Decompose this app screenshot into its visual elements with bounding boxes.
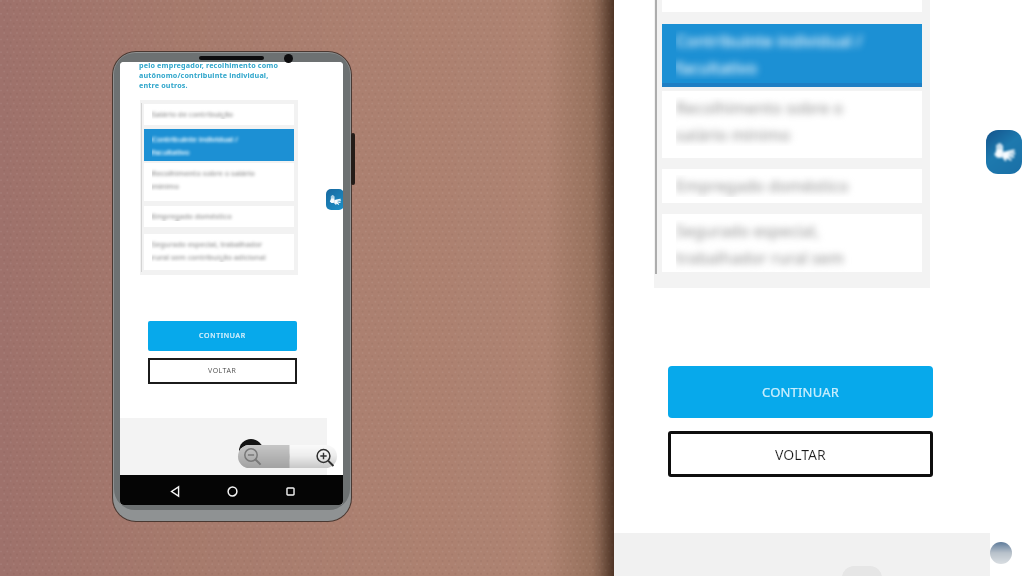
button[interactable]: VOLTAR bbox=[668, 431, 933, 477]
staticText: autônomo/contribuinte individual, bbox=[139, 70, 269, 80]
button[interactable]: Segurado especial, trabalhador rural sem… bbox=[144, 234, 294, 270]
staticText: Segurado especial, trabalhador rural sem… bbox=[152, 239, 274, 262]
button[interactable]: Home bbox=[222, 481, 242, 501]
button[interactable]: VOLTAR bbox=[148, 358, 297, 384]
staticText: Empregado doméstico bbox=[152, 211, 274, 221]
button[interactable]: Zoom out bbox=[239, 442, 263, 466]
button[interactable]: Salário de contribuição bbox=[144, 104, 294, 125]
button[interactable]: Recolhimento sobre o salário mínimo bbox=[144, 163, 294, 201]
button[interactable]: Empregado doméstico bbox=[662, 169, 922, 203]
staticText: VOLTAR bbox=[775, 445, 826, 464]
staticText: Recolhimento sobre o salário mínimo bbox=[152, 168, 274, 191]
button[interactable]: Contribuinte individual / facultativo bbox=[144, 129, 294, 161]
staticText: Segurado especial, trabalhador rural sem… bbox=[676, 220, 894, 278]
button[interactable]: Segurado especial, trabalhador rural sem… bbox=[662, 214, 922, 272]
button[interactable]: CONTINUAR bbox=[148, 321, 297, 351]
button[interactable]: Zoom in bbox=[312, 442, 336, 466]
staticText: Empregado doméstico bbox=[676, 175, 894, 197]
button[interactable]: Recent apps bbox=[280, 481, 300, 501]
staticText: Contribuinte individual / facultativo bbox=[676, 30, 894, 79]
staticText: CONTINUAR bbox=[762, 383, 840, 401]
staticText: VOLTAR bbox=[208, 366, 237, 376]
staticText: entre outros. bbox=[139, 80, 188, 90]
button[interactable]: VLibras sign language bbox=[326, 189, 343, 210]
button[interactable]: VLibras sign language bbox=[986, 130, 1022, 174]
button[interactable]: Contribuinte individual / facultativo bbox=[662, 24, 922, 87]
staticText: Salário de contribuição bbox=[152, 109, 274, 119]
button[interactable]: Empregado doméstico bbox=[144, 206, 294, 227]
button[interactable]: CONTINUAR bbox=[668, 366, 933, 418]
button[interactable]: Recolhimento sobre o salário mínimo bbox=[662, 91, 922, 158]
staticText: Recolhimento sobre o salário mínimo bbox=[676, 97, 894, 146]
staticText: Contribuinte individual / facultativo bbox=[152, 134, 274, 157]
button[interactable]: Back bbox=[165, 481, 185, 501]
staticText: pelo empregador, recolhimento como bbox=[139, 62, 279, 70]
staticText: CONTINUAR bbox=[199, 331, 246, 341]
